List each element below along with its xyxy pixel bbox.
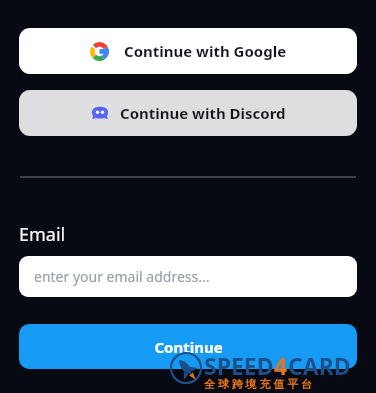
staticText: Continue with Google: [124, 41, 287, 61]
staticText: Continue with Discord: [120, 103, 286, 123]
staticText: CARD: [288, 350, 351, 381]
button[interactable]: Continue with Google: [19, 28, 357, 74]
button[interactable]: Continue with Discord: [19, 90, 357, 136]
staticText: Email: [19, 222, 66, 247]
staticText: 4: [274, 350, 288, 381]
staticText: Continue: [154, 337, 223, 357]
staticText: 全 球 跨 境 充 值 平 台: [204, 376, 313, 391]
staticText: enter your email address...: [34, 267, 210, 286]
button[interactable]: Continue: [19, 324, 357, 369]
button[interactable]: enter your email address...: [19, 256, 357, 297]
staticText: SPEED: [204, 350, 274, 381]
